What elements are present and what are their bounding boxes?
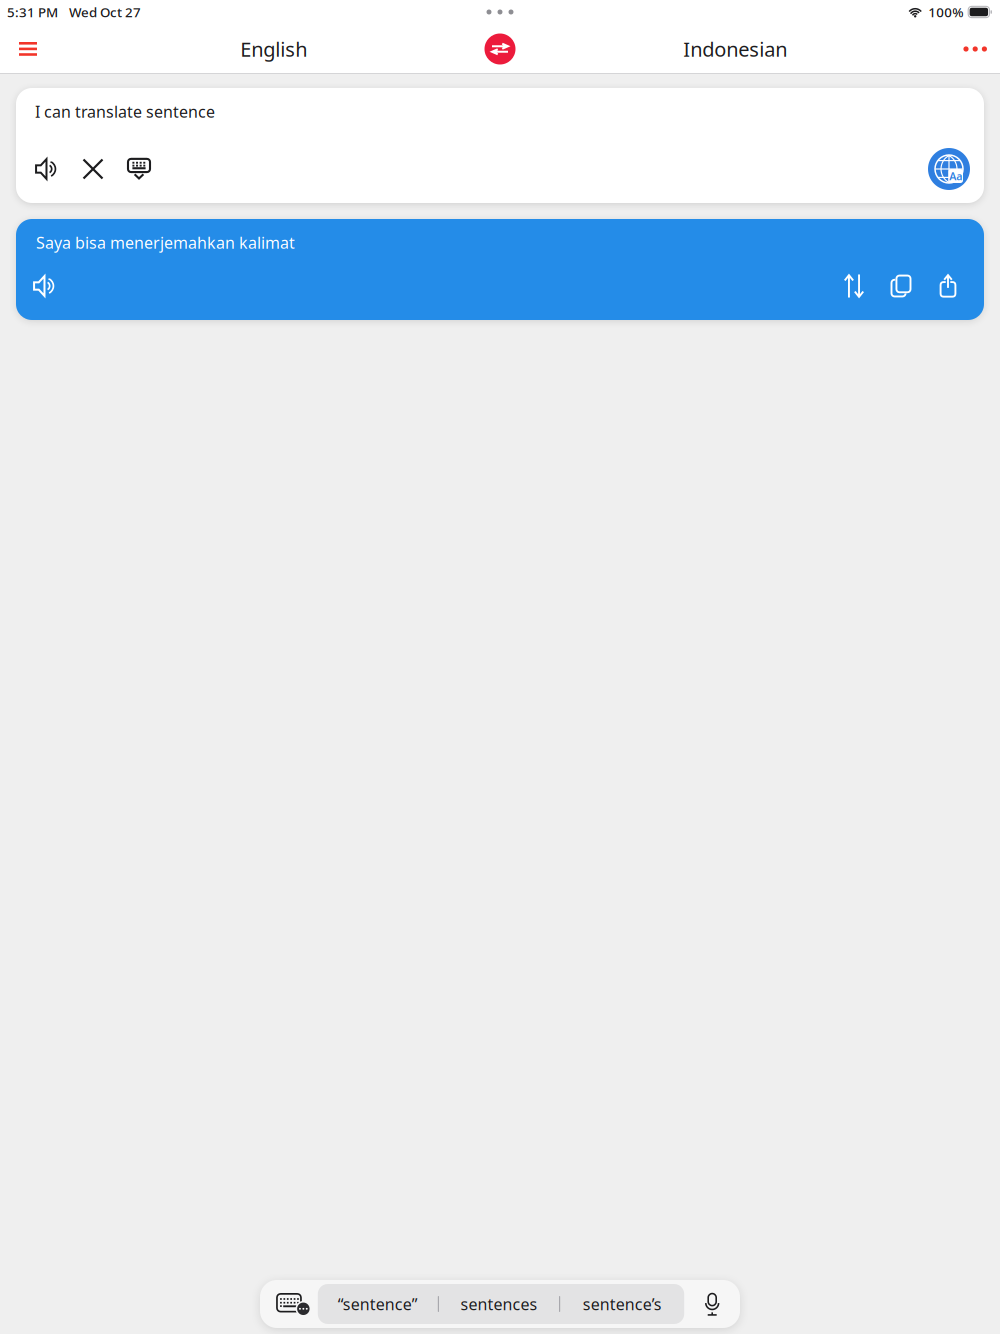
button[interactable]: Swap languages [484,33,515,64]
staticText: sentences [460,1293,537,1315]
button[interactable]: “sentence” [318,1284,438,1324]
button[interactable]: Copy [881,267,921,305]
staticText: Saya bisa menerjemahkan kalimat [36,232,295,253]
button[interactable]: Hide keyboard [119,149,159,189]
button[interactable]: More options [947,26,1000,72]
button[interactable]: Translate [928,148,970,190]
button[interactable]: Switch translation direction [834,267,874,305]
staticText: 5:31 PM [7,3,58,21]
button[interactable]: Listen [27,149,67,189]
staticText: “sentence” [338,1293,418,1315]
button[interactable]: Listen to translation [25,267,65,305]
staticText: English [240,36,307,62]
button[interactable]: Dictate [684,1280,740,1328]
button[interactable]: Clear text [73,149,113,189]
button[interactable]: Indonesian [504,22,966,76]
staticText: sentence’s [583,1293,662,1315]
staticText: Aa [949,169,962,183]
staticText: 100% [928,3,963,21]
button[interactable]: Keyboard settings [260,1280,318,1328]
button[interactable]: Share [928,267,968,305]
button[interactable]: sentence’s [560,1284,684,1324]
staticText: Wed Oct 27 [69,3,141,21]
button[interactable]: sentences [439,1284,559,1324]
button[interactable]: English [43,22,504,76]
button[interactable]: Menu [0,25,56,73]
staticText: Indonesian [683,36,787,62]
staticText: I can translate sentence [35,101,215,122]
